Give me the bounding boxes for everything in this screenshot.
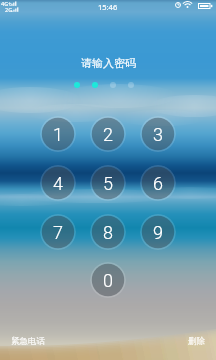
staticText: 2G [5, 6, 13, 13]
staticText: 4 [53, 173, 63, 194]
staticText: 紧急电话 [11, 336, 45, 347]
button[interactable]: 删除 [188, 336, 205, 347]
button[interactable]: 9 [140, 214, 176, 250]
button[interactable]: 7 [40, 214, 76, 250]
staticText: 1 [53, 124, 63, 145]
staticText: 15:46 [98, 2, 118, 12]
staticText: 4G+ [1, 0, 12, 7]
staticText: 6 [153, 173, 163, 194]
staticText: 3 [153, 124, 163, 145]
staticText: 请输入密码 [81, 56, 136, 70]
button[interactable]: 4 [40, 165, 76, 201]
staticText: 8 [103, 222, 113, 243]
button[interactable]: 6 [140, 165, 176, 201]
button[interactable]: 0 [90, 262, 126, 298]
button[interactable]: 2 [90, 116, 126, 152]
button[interactable]: 3 [140, 116, 176, 152]
staticText: 0 [103, 270, 113, 291]
button[interactable]: 5 [90, 165, 126, 201]
staticText: 7 [53, 222, 63, 243]
staticText: 删除 [188, 336, 205, 347]
button[interactable]: 8 [90, 214, 126, 250]
staticText: 5 [103, 173, 113, 194]
staticText: 9 [153, 222, 163, 243]
button[interactable]: 1 [40, 116, 76, 152]
button[interactable]: 紧急电话 [11, 336, 45, 347]
staticText: 2 [103, 124, 113, 145]
